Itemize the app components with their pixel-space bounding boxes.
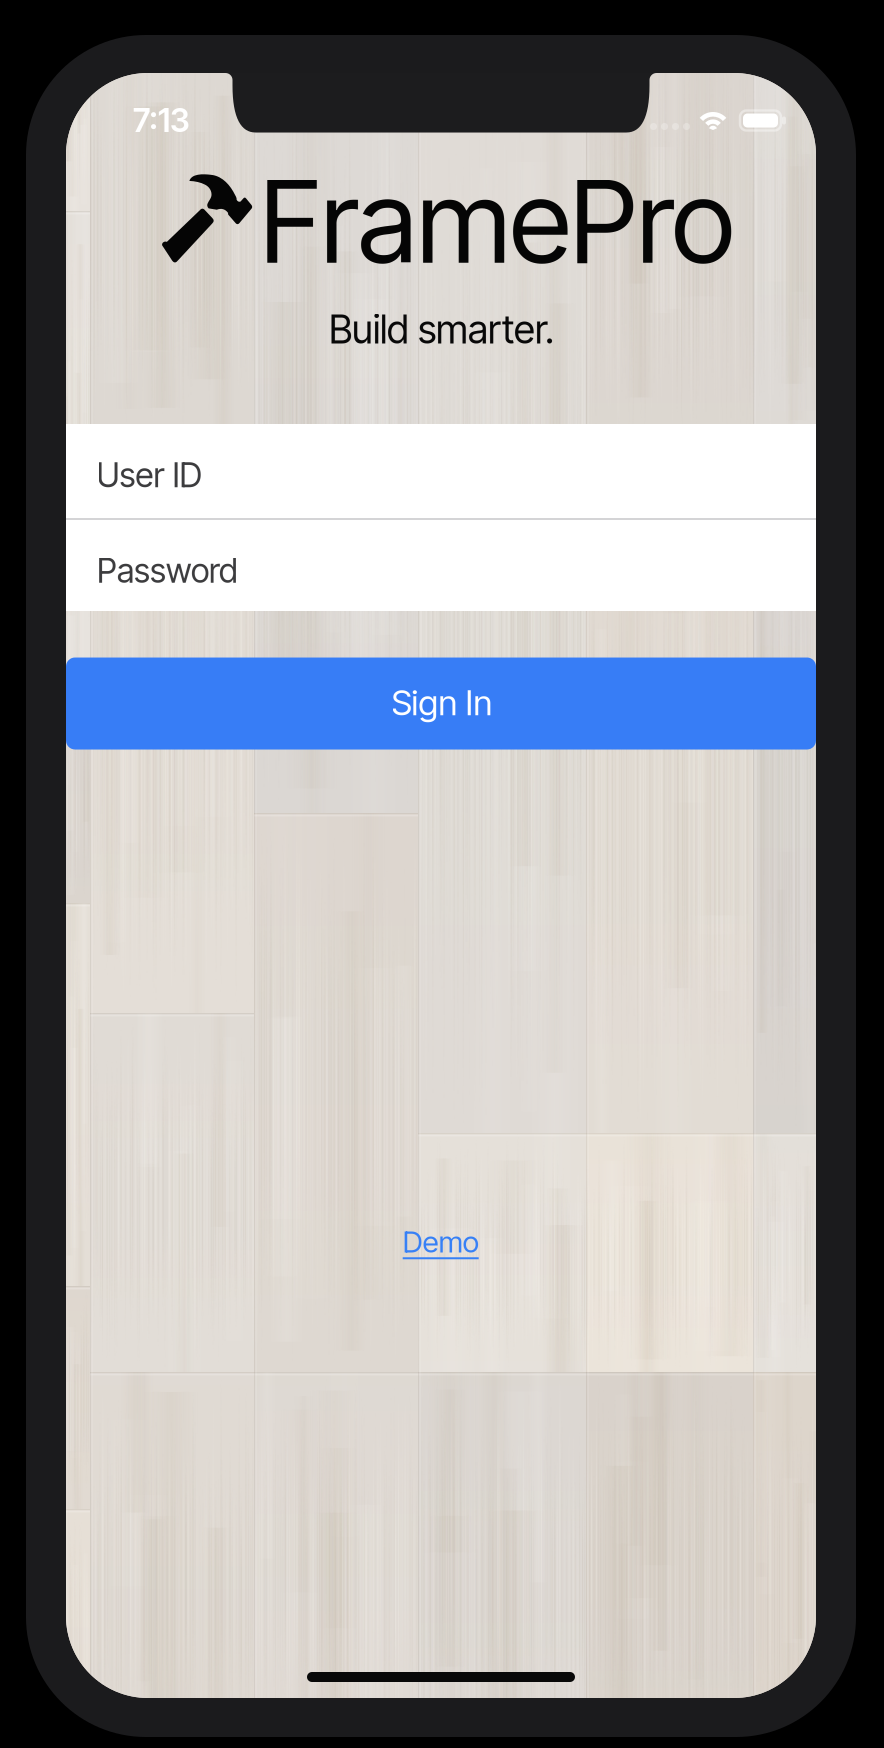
button[interactable]: User ID [66,424,816,519]
staticText: Demo [403,1224,479,1259]
button[interactable]: Sign In [66,657,816,749]
staticText: 7:13 [133,101,190,140]
button[interactable]: Demo [379,1218,547,1266]
staticText: Sign In [392,682,493,724]
staticText: Password [97,550,238,591]
staticText: User ID [96,455,201,495]
staticText: Build smarter. [329,306,554,353]
staticText: FramePro [260,153,734,290]
button[interactable]: Password [66,519,816,611]
